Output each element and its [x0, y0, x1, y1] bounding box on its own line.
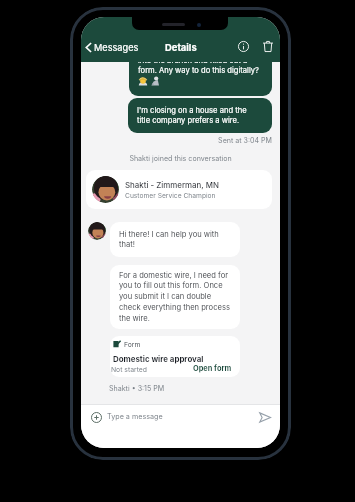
button[interactable]: I'm closing on a house and the title com…: [128, 98, 272, 133]
button[interactable]: Hi there! I can help you with that!: [110, 222, 240, 257]
button[interactable]: Messages: [84, 40, 140, 55]
button[interactable]: Shakti - Zimmerman, MN: [86, 170, 272, 209]
staticText: Not started: [111, 365, 147, 373]
staticText: Shakti joined this conversation: [81, 154, 280, 163]
staticText: Type a message: [107, 412, 163, 421]
staticText: Form: [124, 340, 141, 348]
staticText: into the branch and filled out a form. A…: [138, 56, 259, 75]
staticText: Details: [165, 42, 197, 53]
button[interactable]: For a domestic wire, I need for you to f…: [110, 265, 240, 329]
staticText: Customer Service Champion: [125, 192, 216, 200]
staticText: Shakti - Zimmerman, MN: [125, 180, 219, 190]
button[interactable]: Send: [256, 408, 274, 426]
staticText: Hi there! I can help you with that!: [119, 230, 219, 249]
button[interactable]: Add attachment: [88, 409, 105, 426]
staticText: Open form: [193, 364, 232, 373]
staticText: Messages: [94, 42, 139, 53]
staticText: Shakti • 3:15 PM: [109, 384, 165, 393]
button[interactable]: Delete conversation: [259, 38, 276, 55]
button[interactable]: Form: [110, 336, 240, 377]
button[interactable]: Open form: [193, 364, 232, 373]
staticText: I'm closing on a house and the title com…: [137, 106, 247, 125]
staticText: Sent at 3:04 PM: [81, 136, 272, 145]
button[interactable]: Conversation info: [235, 38, 252, 55]
staticText: For a domestic wire, I need for you to f…: [119, 271, 230, 323]
staticText: Domestic wire approval: [113, 354, 204, 364]
